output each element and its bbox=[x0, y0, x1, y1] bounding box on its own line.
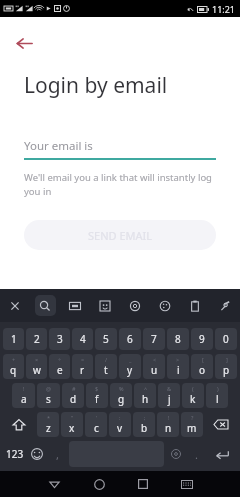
staticText: ! bbox=[168, 414, 170, 421]
button[interactable]: 7 bbox=[143, 328, 165, 350]
button[interactable]: [ bbox=[191, 354, 213, 379]
staticText: l bbox=[216, 392, 219, 406]
staticText: 2 bbox=[34, 332, 40, 346]
button[interactable]: / bbox=[95, 354, 117, 379]
staticText: 8 bbox=[175, 332, 181, 346]
button[interactable]: Clipboard bbox=[180, 289, 210, 322]
staticText: " bbox=[71, 414, 74, 421]
button[interactable]: = bbox=[72, 354, 93, 379]
button[interactable]: 0 bbox=[215, 328, 237, 350]
staticText: w bbox=[33, 363, 41, 377]
staticText: i bbox=[177, 363, 180, 377]
staticText: SEND EMAIL bbox=[88, 228, 153, 243]
button[interactable]: * bbox=[37, 412, 59, 437]
button[interactable]: Emoji bbox=[27, 441, 47, 467]
button[interactable]: ' bbox=[85, 412, 107, 437]
staticText: / bbox=[105, 356, 108, 363]
staticText: b bbox=[141, 421, 148, 435]
staticText: % bbox=[119, 385, 124, 392]
button[interactable]: , bbox=[47, 441, 67, 467]
staticText: v bbox=[117, 421, 123, 435]
staticText: . bbox=[195, 447, 198, 462]
staticText: : bbox=[119, 414, 121, 421]
staticText: # bbox=[72, 385, 76, 392]
staticText: Your email is bbox=[24, 138, 93, 154]
staticText: ) bbox=[217, 385, 219, 392]
staticText: ( bbox=[192, 385, 194, 392]
staticText: m bbox=[187, 421, 197, 435]
button[interactable]: < bbox=[143, 354, 165, 379]
button[interactable]: " bbox=[61, 412, 83, 437]
button[interactable]: Hide keyboard bbox=[165, 471, 209, 497]
staticText: a bbox=[21, 392, 27, 406]
button[interactable]: & bbox=[158, 383, 180, 408]
button[interactable]: 123 bbox=[2, 441, 27, 467]
button[interactable]: . bbox=[186, 441, 206, 467]
button[interactable]: 1 bbox=[3, 328, 24, 350]
button[interactable]: % bbox=[110, 383, 132, 408]
button[interactable]: Sticker bbox=[90, 289, 120, 322]
staticText: g bbox=[118, 392, 125, 406]
staticText: q bbox=[10, 363, 17, 377]
staticText: , bbox=[56, 447, 59, 462]
staticText: k bbox=[190, 392, 196, 406]
button[interactable]: _ bbox=[119, 354, 141, 379]
button[interactable]: Theme bbox=[150, 289, 180, 322]
staticText: + bbox=[12, 356, 16, 363]
button[interactable]: + bbox=[3, 354, 24, 379]
button[interactable]: ; bbox=[133, 412, 155, 437]
button[interactable]: 3 bbox=[49, 328, 70, 350]
button[interactable]: Back bbox=[32, 471, 77, 497]
button[interactable]: 5 bbox=[95, 328, 117, 350]
staticText: 6 bbox=[127, 332, 133, 346]
staticText: = bbox=[81, 356, 85, 363]
button[interactable] bbox=[166, 441, 186, 467]
staticText: j bbox=[168, 392, 171, 406]
staticText: y bbox=[127, 363, 133, 377]
button[interactable]: $ bbox=[86, 383, 108, 408]
button[interactable]: : bbox=[109, 412, 131, 437]
button[interactable]: 4 bbox=[72, 328, 93, 350]
button[interactable]: Enter bbox=[206, 441, 238, 467]
staticText: p bbox=[223, 363, 230, 377]
button[interactable]: Search bbox=[30, 289, 60, 322]
button[interactable]: × bbox=[26, 354, 47, 379]
button[interactable]: 9 bbox=[191, 328, 213, 350]
button[interactable]: 8 bbox=[167, 328, 189, 350]
button[interactable]: ÷ bbox=[49, 354, 70, 379]
button[interactable]: Close bbox=[0, 289, 30, 322]
staticText: d bbox=[70, 392, 77, 406]
button[interactable]: Pin bbox=[210, 289, 240, 322]
button[interactable]: ( bbox=[182, 383, 204, 408]
button[interactable]: ! bbox=[157, 412, 179, 437]
staticText: ; bbox=[144, 414, 146, 421]
staticText: < bbox=[153, 356, 157, 363]
staticText: s bbox=[46, 392, 51, 406]
button[interactable]: SEND EMAIL bbox=[24, 220, 216, 250]
staticText: ! bbox=[23, 385, 25, 392]
button[interactable]: ) bbox=[206, 383, 228, 408]
button[interactable]: Back bbox=[8, 27, 40, 59]
staticText: z bbox=[46, 421, 51, 435]
button[interactable]: Your email is bbox=[24, 136, 216, 156]
button[interactable]: GIF bbox=[60, 289, 90, 322]
staticText: & bbox=[167, 385, 172, 392]
button[interactable]: ^ bbox=[134, 383, 156, 408]
button[interactable]: 2 bbox=[26, 328, 47, 350]
button[interactable]: Settings bbox=[120, 289, 150, 322]
button[interactable]: ] bbox=[215, 354, 237, 379]
button[interactable]: # bbox=[62, 383, 84, 408]
staticText: _ bbox=[129, 356, 132, 363]
button[interactable]: ? bbox=[181, 412, 203, 437]
button[interactable]: Shift bbox=[2, 412, 36, 437]
button[interactable]: Home bbox=[77, 471, 121, 497]
staticText: t bbox=[104, 363, 108, 377]
button[interactable]: @ bbox=[37, 383, 60, 408]
button[interactable]: ! bbox=[12, 383, 35, 408]
staticText: 7 bbox=[151, 332, 157, 346]
button[interactable]: Recents bbox=[121, 471, 165, 497]
button[interactable]: 6 bbox=[119, 328, 141, 350]
button[interactable]: Backspace bbox=[204, 412, 238, 437]
button[interactable]: > bbox=[167, 354, 189, 379]
